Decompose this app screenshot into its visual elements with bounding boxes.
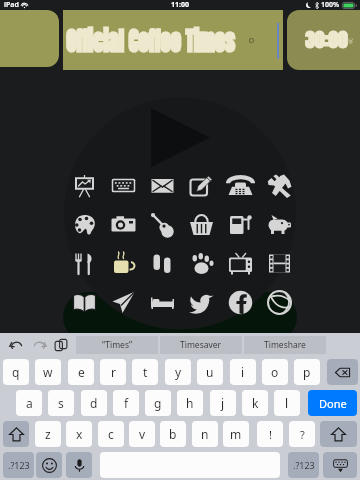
staticText: r [111, 364, 116, 380]
staticText: c [108, 426, 114, 442]
staticText: n [201, 426, 209, 442]
staticText: u [206, 364, 214, 380]
button[interactable]: ? [289, 421, 315, 447]
button[interactable]: Pets [182, 244, 221, 283]
button[interactable]: s [48, 390, 74, 416]
button[interactable]: Send [104, 283, 143, 322]
staticText: Timeshare [264, 339, 306, 351]
button[interactable]: Undo [7, 336, 25, 354]
button[interactable]: Hide keyboard [323, 452, 357, 478]
button[interactable]: .?123 [3, 452, 34, 478]
button[interactable]: Official Coffee Times [63, 10, 283, 70]
button[interactable]: Back [0, 10, 59, 67]
button[interactable]: r [100, 359, 126, 385]
button[interactable]: TV [221, 244, 260, 283]
button[interactable]: l [274, 390, 300, 416]
button[interactable]: Hotel [143, 283, 182, 322]
button[interactable]: o [262, 359, 288, 385]
staticText: a [26, 395, 33, 411]
staticText: j [221, 395, 225, 411]
staticText: q [12, 364, 20, 380]
staticText: w [43, 364, 53, 380]
button[interactable]: i [230, 359, 256, 385]
button[interactable]: p [294, 359, 320, 385]
button[interactable]: Music [143, 205, 182, 244]
button[interactable]: y [165, 359, 191, 385]
staticText: ! [269, 427, 272, 442]
button[interactable]: f [113, 390, 139, 416]
button[interactable]: Shopping [182, 205, 221, 244]
button[interactable]: Tools [260, 166, 299, 205]
button[interactable]: Done [308, 390, 357, 416]
staticText: ? [300, 427, 305, 442]
button[interactable]: c [98, 421, 124, 447]
staticText: p [303, 364, 311, 380]
button[interactable]: Camera [104, 205, 143, 244]
button[interactable]: “Times” [76, 336, 158, 354]
button[interactable]: Timesaver [160, 336, 242, 354]
button[interactable]: Art [65, 205, 104, 244]
button[interactable]: h [177, 390, 203, 416]
staticText: y [175, 364, 182, 380]
button[interactable]: w [35, 359, 61, 385]
button[interactable]: Shift [320, 421, 357, 447]
button[interactable]: ! [257, 421, 283, 447]
button[interactable]: e [68, 359, 94, 385]
button[interactable]: Dining [65, 244, 104, 283]
button[interactable]: Steps [143, 244, 182, 283]
button[interactable]: Savings [260, 205, 299, 244]
staticText: t [143, 364, 148, 380]
button[interactable]: Keyboard [104, 166, 143, 205]
button[interactable]: n [192, 421, 218, 447]
button[interactable]: a [16, 390, 42, 416]
button[interactable]: Shift [3, 421, 29, 447]
staticText: Official Coffee Times [66, 21, 235, 60]
button[interactable]: Redo [30, 336, 48, 354]
button[interactable]: t [132, 359, 158, 385]
staticText: v [139, 426, 146, 442]
button[interactable]: Timeshare [244, 336, 326, 354]
button[interactable]: Phone [221, 166, 260, 205]
staticText: h [186, 395, 194, 411]
button[interactable]: x [66, 421, 92, 447]
staticText: m [230, 426, 242, 442]
staticText: z [45, 426, 51, 442]
button[interactable]: q [3, 359, 29, 385]
button[interactable]: Coffee [104, 244, 143, 283]
button[interactable]: Fuel [221, 205, 260, 244]
button[interactable]: g [145, 390, 171, 416]
staticText: s [58, 395, 64, 411]
staticText: “Times” [102, 339, 133, 351]
button[interactable]: j [210, 390, 236, 416]
button[interactable]: Backspace [327, 359, 358, 385]
button[interactable]: m [223, 421, 249, 447]
staticText: iPad [4, 0, 19, 10]
staticText: 30:00 [305, 26, 348, 55]
button[interactable]: Film [260, 244, 299, 283]
button[interactable]: Presentation [65, 166, 104, 205]
button[interactable]: k [242, 390, 268, 416]
button[interactable]: Twitter [182, 283, 221, 322]
button[interactable]: u [197, 359, 223, 385]
staticText: o [271, 364, 279, 380]
button[interactable]: .?123 [288, 452, 319, 478]
staticText: b [169, 426, 177, 442]
button[interactable]: Dictation [66, 452, 92, 478]
button[interactable]: 30:00 [287, 10, 360, 70]
button[interactable]: Compose [182, 166, 221, 205]
button[interactable]: Reading [65, 283, 104, 322]
button[interactable]: Emoji [36, 452, 62, 478]
staticText: Done [319, 396, 347, 411]
button[interactable]: z [35, 421, 61, 447]
button[interactable]: Paste [52, 336, 70, 354]
button[interactable]: Dribbble [260, 283, 299, 322]
staticText: Timesaver [180, 339, 222, 351]
button[interactable]: Mail [143, 166, 182, 205]
button[interactable]: b [160, 421, 186, 447]
button[interactable]: d [81, 390, 107, 416]
button[interactable]: v [129, 421, 155, 447]
staticText: x [76, 426, 83, 442]
button[interactable]: Facebook [221, 283, 260, 322]
staticText: i [241, 364, 245, 380]
